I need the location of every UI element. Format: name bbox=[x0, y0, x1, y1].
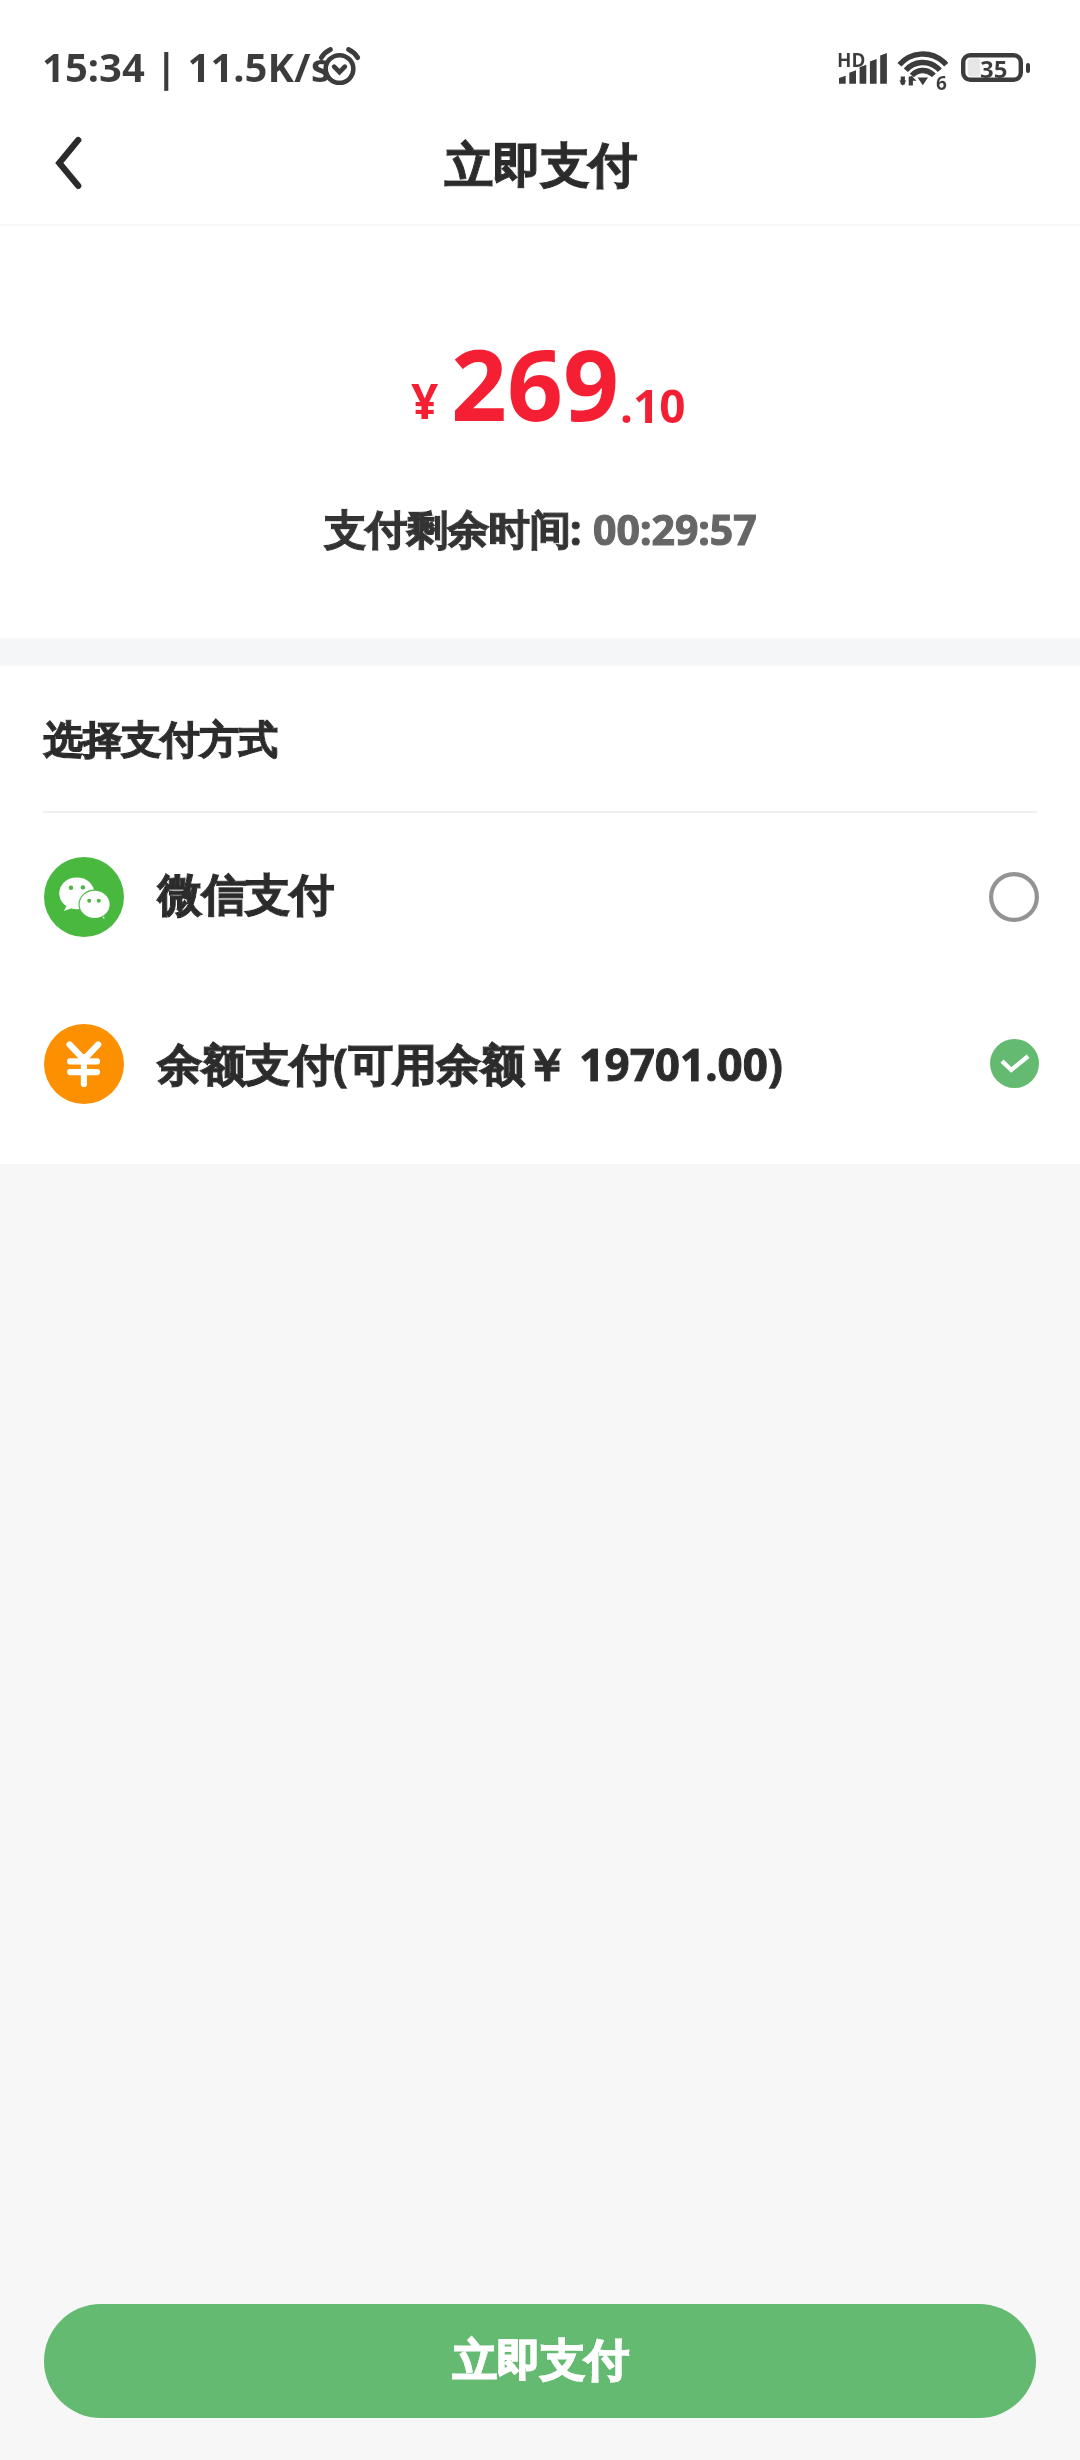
staticText: ¥ bbox=[411, 368, 439, 433]
staticText: 269 bbox=[451, 316, 620, 449]
staticText: .10 bbox=[620, 374, 686, 437]
staticText: HD bbox=[837, 47, 866, 73]
staticText: 立即支付 bbox=[452, 2334, 628, 2389]
staticText: 余额支付(可用余额￥ 19701.00) bbox=[157, 1034, 783, 1094]
button[interactable]: 余额支付(可用余额￥ 19701.00) bbox=[0, 980, 1080, 1147]
staticText: 立即支付 bbox=[444, 137, 636, 197]
staticText: 支付剩余时间: bbox=[324, 501, 593, 557]
staticText: 立即支付 bbox=[444, 137, 636, 197]
button[interactable]: Back bbox=[0, 114, 130, 224]
staticText: 支付剩余时间: bbox=[324, 501, 593, 557]
staticText: 6 bbox=[936, 70, 947, 96]
staticText: 微信支付 bbox=[157, 869, 333, 924]
staticText: 选择支付方式 bbox=[43, 716, 277, 765]
staticText: 选择支付方式 bbox=[43, 716, 277, 765]
staticText: 微信支付 bbox=[157, 869, 333, 924]
staticText: 35 bbox=[980, 52, 1008, 81]
button[interactable]: 微信支付 bbox=[0, 813, 1080, 980]
button[interactable]: 立即支付 bbox=[44, 2304, 1036, 2418]
staticText: 00:29:57 bbox=[593, 501, 757, 557]
staticText: 00:29:57 bbox=[593, 501, 757, 557]
staticText: 余额支付(可用余额￥ 19701.00) bbox=[157, 1034, 783, 1094]
staticText: 15:34 | 11.5K/s bbox=[42, 39, 331, 93]
staticText: 立即支付 bbox=[452, 2334, 628, 2389]
